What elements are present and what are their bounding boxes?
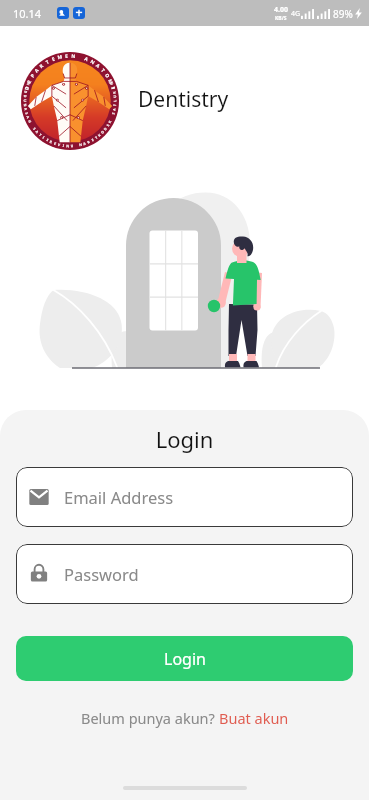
staticText: Login bbox=[164, 648, 206, 670]
button[interactable]: Password bbox=[16, 544, 353, 604]
staticText: Password bbox=[64, 563, 139, 585]
staticText: Belum punya akun? bbox=[81, 708, 219, 728]
staticText: 10.14 bbox=[13, 6, 42, 21]
button[interactable]: Email Address bbox=[16, 467, 353, 527]
staticText: 4.00 bbox=[274, 5, 288, 15]
staticText: KB/S bbox=[275, 15, 287, 22]
staticText: Buat akun bbox=[219, 708, 289, 728]
staticText: Login bbox=[0, 424, 369, 454]
button[interactable]: Buat akun bbox=[219, 708, 289, 728]
staticText: 89% bbox=[333, 7, 353, 21]
staticText: Email Address bbox=[64, 486, 174, 508]
button[interactable]: Login bbox=[16, 636, 353, 681]
staticText: 4G bbox=[291, 9, 301, 19]
staticText: Dentistry bbox=[138, 85, 229, 114]
